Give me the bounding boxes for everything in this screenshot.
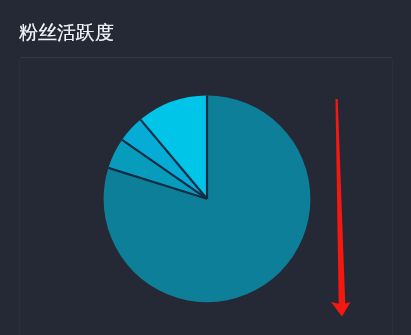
other: 粉丝活跃度饼图: [19, 57, 393, 335]
button[interactable]: 粉丝活跃度: [19, 21, 114, 45]
button[interactable]: 粉丝活跃度饼图: [19, 57, 393, 335]
